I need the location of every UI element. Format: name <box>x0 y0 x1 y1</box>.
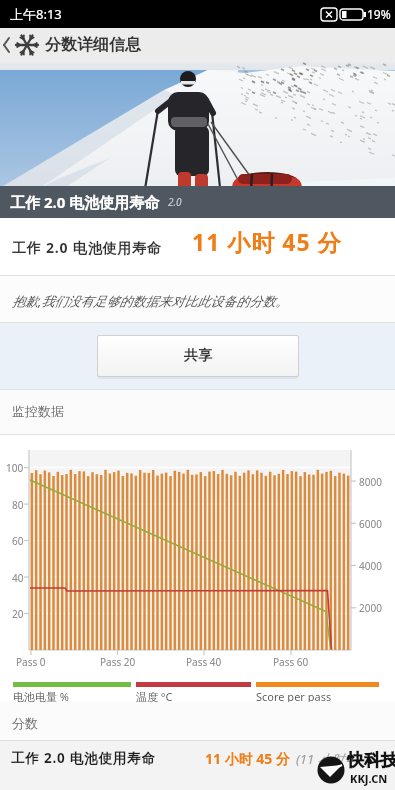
staticText: KKJ.CN <box>350 771 388 786</box>
staticText: 电池电量 % <box>13 689 70 704</box>
button[interactable] <box>0 28 14 62</box>
staticText: 共享 <box>184 347 212 365</box>
staticText: 工作 2.0 电池使用寿命 <box>12 238 162 257</box>
staticText: Pass 60 <box>273 655 309 669</box>
staticText: Score per pass <box>256 689 332 704</box>
staticText: 100 <box>6 461 24 475</box>
staticText: 11 小时 45 分 <box>192 226 342 257</box>
staticText: 80 <box>12 498 24 512</box>
staticText: 快科技 <box>347 750 395 771</box>
staticText: 20 <box>12 607 24 621</box>
staticText: (11 小时 4 <box>296 750 355 768</box>
staticText: 11 小时 45 分 <box>205 749 290 768</box>
staticText: Pass 20 <box>100 655 136 669</box>
staticText: 监控数据 <box>12 403 64 419</box>
staticText: Pass 40 <box>186 655 222 669</box>
button[interactable]: 共享 <box>97 335 299 377</box>
staticText: 温度 °C <box>136 689 173 704</box>
staticText: 60 <box>12 534 24 548</box>
staticText: 8000 <box>359 475 382 489</box>
staticText: 19% <box>367 6 391 22</box>
staticText: 上午8:13 <box>10 5 62 23</box>
staticText: 4000 <box>359 559 382 573</box>
staticText: 40 <box>12 571 24 585</box>
staticText: 2.0 <box>168 195 182 209</box>
staticText: 分数详细信息 <box>45 35 141 55</box>
staticText: 工作 2.0 电池使用寿命 <box>10 192 160 212</box>
staticText: 2000 <box>359 601 382 615</box>
button[interactable]: 工作 2.0 电池使用寿命 <box>0 741 395 790</box>
staticText: 工作 2.0 电池使用寿命 <box>11 749 156 767</box>
staticText: 分数 <box>12 715 38 731</box>
staticText: Pass 0 <box>16 655 46 669</box>
staticText: 抱歉,我们没有足够的数据来对比此设备的分数。 <box>12 292 289 310</box>
staticText: 6000 <box>359 517 382 531</box>
